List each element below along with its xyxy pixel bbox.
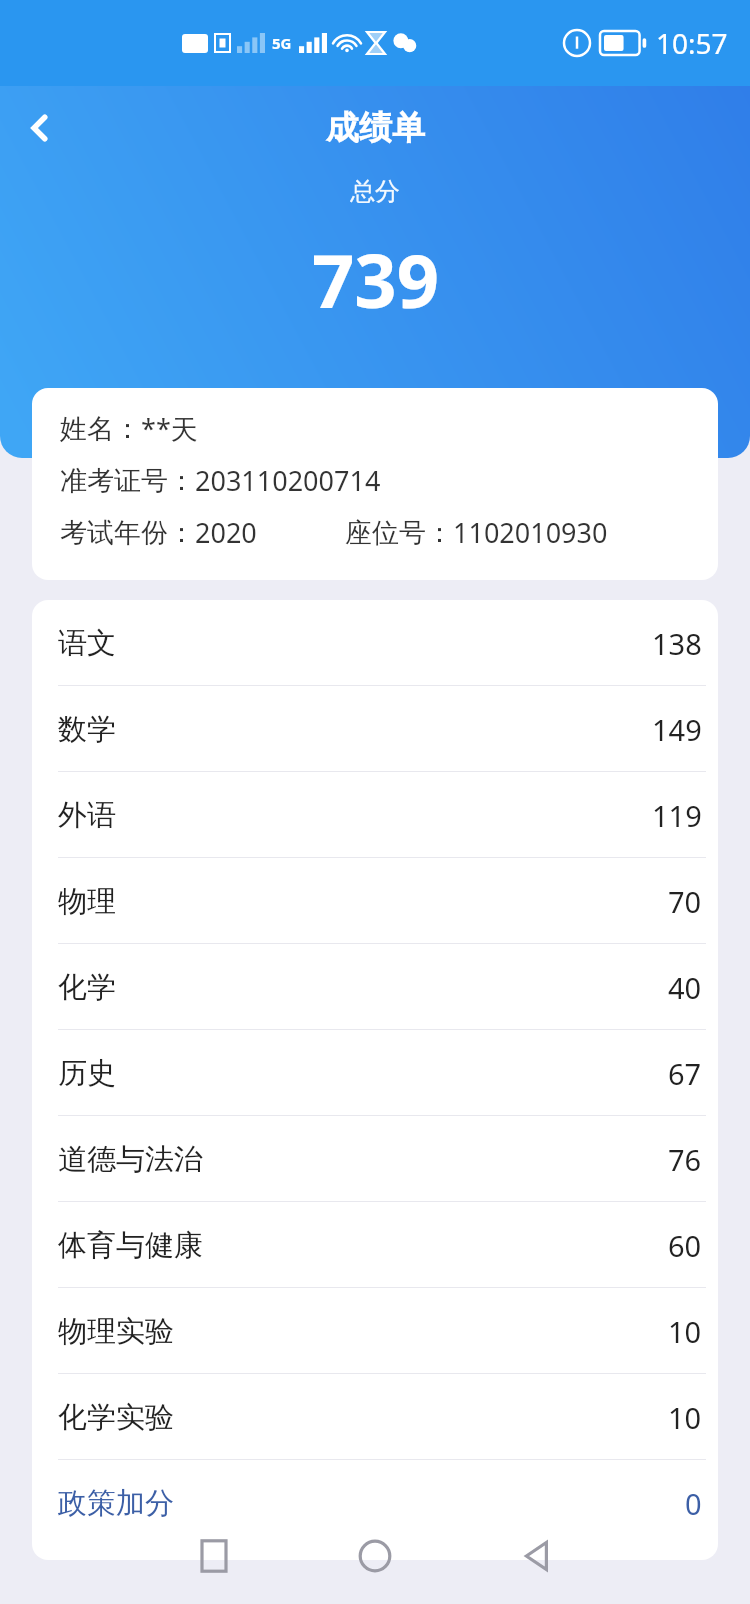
staticText: 10:57 bbox=[656, 24, 728, 62]
staticText: 历史 bbox=[58, 1055, 116, 1092]
staticText: 76 bbox=[668, 1140, 702, 1179]
staticText: 739 bbox=[312, 229, 439, 330]
staticText: 化学实验 bbox=[58, 1399, 174, 1436]
staticText: 138 bbox=[652, 624, 702, 663]
staticText: 0 bbox=[685, 1484, 702, 1523]
staticText: 70 bbox=[668, 882, 702, 921]
staticText: 物理 bbox=[58, 883, 116, 920]
button[interactable]: 化学实验 bbox=[32, 1374, 718, 1460]
button[interactable]: 政策加分 bbox=[32, 1460, 718, 1546]
button[interactable]: Recents bbox=[178, 1520, 250, 1592]
button[interactable]: 外语 bbox=[32, 772, 718, 858]
staticText: 119 bbox=[652, 796, 702, 835]
staticText: 成绩单 bbox=[326, 107, 425, 149]
staticText: 1102010930 bbox=[453, 514, 608, 551]
staticText: 物理实验 bbox=[58, 1313, 174, 1350]
staticText: 姓名： bbox=[60, 412, 141, 446]
staticText: 数学 bbox=[58, 711, 116, 748]
staticText: 准考证号： bbox=[60, 464, 195, 498]
button[interactable]: 体育与健康 bbox=[32, 1202, 718, 1288]
button[interactable]: Home bbox=[339, 1520, 411, 1592]
staticText: 10 bbox=[668, 1398, 702, 1437]
button[interactable]: 化学 bbox=[32, 944, 718, 1030]
staticText: 体育与健康 bbox=[58, 1227, 203, 1264]
staticText: 化学 bbox=[58, 969, 116, 1006]
staticText: 座位号： bbox=[345, 516, 453, 550]
staticText: 2020 bbox=[195, 514, 257, 551]
staticText: 考试年份： bbox=[60, 516, 195, 550]
staticText: 203110200714 bbox=[195, 462, 381, 499]
button[interactable]: 道德与法治 bbox=[32, 1116, 718, 1202]
staticText: 10 bbox=[668, 1312, 702, 1351]
staticText: 外语 bbox=[58, 797, 116, 834]
button[interactable]: 语文 bbox=[32, 600, 718, 686]
staticText: 40 bbox=[668, 968, 702, 1007]
button[interactable]: Back bbox=[500, 1520, 572, 1592]
staticText: **天 bbox=[141, 410, 198, 447]
staticText: 60 bbox=[668, 1226, 702, 1265]
staticText: 语文 bbox=[58, 625, 116, 662]
button[interactable]: 数学 bbox=[32, 686, 718, 772]
staticText: 总分 bbox=[350, 176, 400, 207]
button[interactable]: Back bbox=[8, 96, 72, 160]
staticText: 政策加分 bbox=[58, 1485, 174, 1522]
staticText: 149 bbox=[652, 710, 702, 749]
staticText: 5G bbox=[272, 33, 292, 53]
button[interactable]: 物理 bbox=[32, 858, 718, 944]
button[interactable]: 姓名： bbox=[32, 388, 718, 580]
staticText: 67 bbox=[668, 1054, 702, 1093]
button[interactable]: 历史 bbox=[32, 1030, 718, 1116]
staticText: 道德与法治 bbox=[58, 1141, 203, 1178]
button[interactable]: 物理实验 bbox=[32, 1288, 718, 1374]
